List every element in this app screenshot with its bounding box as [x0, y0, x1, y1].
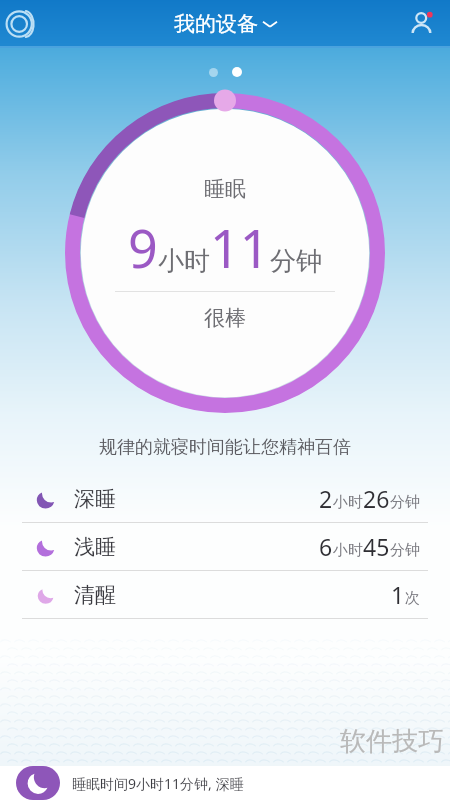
staticText: 11	[210, 212, 270, 283]
staticText: 我的设备	[174, 11, 258, 37]
staticText: 次	[405, 589, 420, 608]
staticText: 规律的就寝时间能让您精神百倍	[99, 436, 351, 459]
staticText: 45	[363, 531, 390, 562]
button[interactable]: 我的设备	[174, 11, 277, 37]
staticText: 很棒	[204, 305, 246, 331]
button[interactable]: 睡眠	[60, 88, 390, 418]
button[interactable]: 深睡	[0, 475, 450, 522]
staticText: 清醒	[74, 582, 116, 608]
staticText: 小时	[158, 245, 210, 278]
staticText: 睡眠时间9小时11分钟, 深睡	[72, 774, 244, 793]
button[interactable]: 清醒	[0, 571, 450, 618]
staticText: 软件技巧	[340, 725, 444, 758]
staticText: 9	[128, 212, 158, 283]
staticText: 1	[391, 579, 405, 610]
staticText: 分钟	[390, 493, 420, 512]
button[interactable]: 睡眠时间9小时11分钟, 深睡	[0, 766, 450, 800]
staticText: 小时	[333, 493, 363, 512]
button[interactable]: Profile	[400, 2, 444, 46]
staticText: 分钟	[270, 245, 322, 278]
button[interactable]: 浅睡	[0, 523, 450, 570]
staticText: 深睡	[74, 486, 116, 512]
staticText: 小时	[333, 541, 363, 560]
staticText: 浅睡	[74, 534, 116, 560]
staticText: 6	[319, 531, 333, 562]
staticText: 2	[319, 483, 333, 514]
staticText: 分钟	[390, 541, 420, 560]
staticText: 睡眠	[204, 176, 246, 202]
button[interactable]: Menu	[2, 2, 46, 46]
staticText: 26	[363, 483, 390, 514]
